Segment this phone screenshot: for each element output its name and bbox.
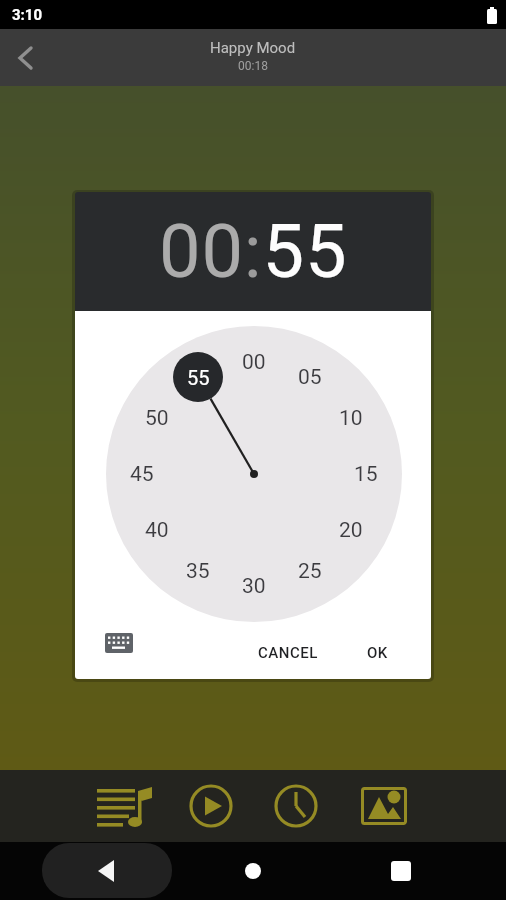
staticText: 55 <box>187 366 210 389</box>
staticText: 00 <box>242 350 266 374</box>
staticText: 00:55 <box>159 208 348 295</box>
staticText: OK <box>367 644 388 662</box>
button[interactable]: OK <box>347 633 407 673</box>
button[interactable] <box>189 784 233 828</box>
button[interactable]: CANCEL <box>238 633 338 673</box>
staticText: 20 <box>339 518 363 542</box>
staticText: 10 <box>339 406 363 430</box>
staticText: CANCEL <box>258 644 318 662</box>
staticText: 30 <box>242 574 266 598</box>
staticText: 35 <box>186 559 210 583</box>
button[interactable] <box>97 778 153 834</box>
button[interactable] <box>386 856 416 886</box>
button[interactable] <box>14 46 38 70</box>
button[interactable]: 55 <box>173 352 223 402</box>
staticText: 25 <box>298 559 322 583</box>
staticText: Happy Mood <box>210 39 296 57</box>
button[interactable] <box>42 843 172 898</box>
button[interactable] <box>274 784 318 828</box>
staticText: 05 <box>298 365 322 389</box>
staticText: 00:18 <box>238 59 268 73</box>
button[interactable] <box>361 784 407 828</box>
button[interactable] <box>105 631 133 655</box>
staticText: 45 <box>130 462 154 486</box>
staticText: 3:10 <box>12 6 43 24</box>
staticText: 55 <box>186 365 210 389</box>
staticText: 40 <box>145 518 169 542</box>
button[interactable] <box>238 856 268 886</box>
staticText: 15 <box>354 462 378 486</box>
staticText: 50 <box>145 406 169 430</box>
